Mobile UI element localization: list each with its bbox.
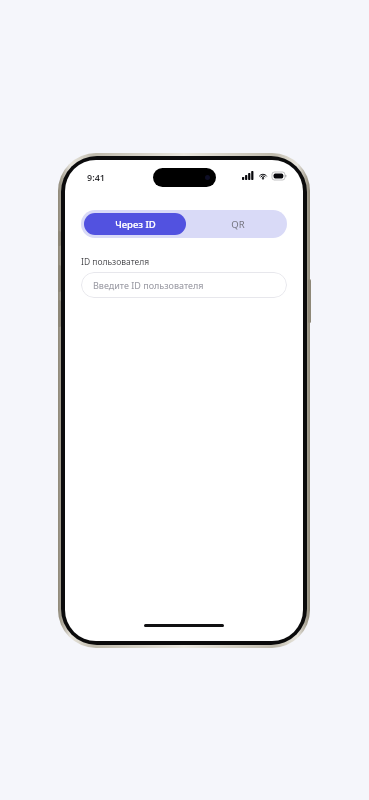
staticText: QR — [231, 218, 245, 231]
staticText: Введите ID пользователя — [93, 279, 204, 291]
button[interactable]: Через ID — [84, 213, 186, 235]
button[interactable]: Введите ID пользователя — [81, 272, 287, 298]
staticText: 9:41 — [87, 171, 105, 183]
button[interactable]: QR — [192, 213, 284, 235]
staticText: Через ID — [115, 218, 156, 231]
staticText: ID пользователя — [81, 256, 150, 268]
